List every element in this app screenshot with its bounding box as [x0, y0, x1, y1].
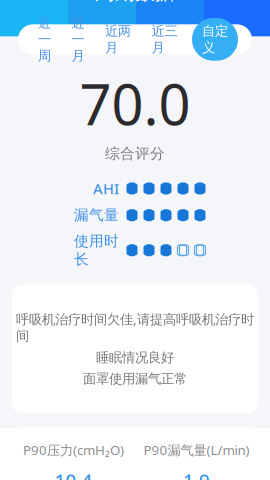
staticText: AHI: [93, 179, 119, 198]
staticText: 近一周: [38, 15, 51, 64]
staticText: 面罩使用漏气正常: [83, 371, 187, 387]
button[interactable]: 近一周: [32, 10, 57, 69]
staticText: P90压力(cmH₂O): [23, 441, 124, 459]
staticText: 70.0: [79, 66, 190, 141]
staticText: 周期数据: [95, 0, 175, 5]
button[interactable]: 近一月: [65, 10, 90, 69]
button[interactable]: 近三月: [145, 18, 183, 61]
staticText: 睡眠情况良好: [96, 349, 174, 366]
button[interactable]: 自定义: [192, 18, 238, 61]
staticText: 漏气量: [74, 206, 119, 224]
staticText: 使用时长: [74, 232, 119, 268]
staticText: P90漏气量(L/min): [143, 441, 249, 459]
staticText: 自定义: [202, 23, 228, 56]
button[interactable]: 近两月: [99, 18, 137, 61]
staticText: 近一月: [71, 15, 84, 64]
staticText: 1.9: [183, 468, 210, 480]
staticText: 呼吸机治疗时间欠佳,请提高呼吸机治疗时间: [16, 310, 254, 344]
staticText: 近两月: [105, 23, 131, 56]
staticText: 10.4: [54, 468, 92, 480]
staticText: 近三月: [151, 23, 177, 56]
staticText: 综合评分: [105, 145, 165, 163]
